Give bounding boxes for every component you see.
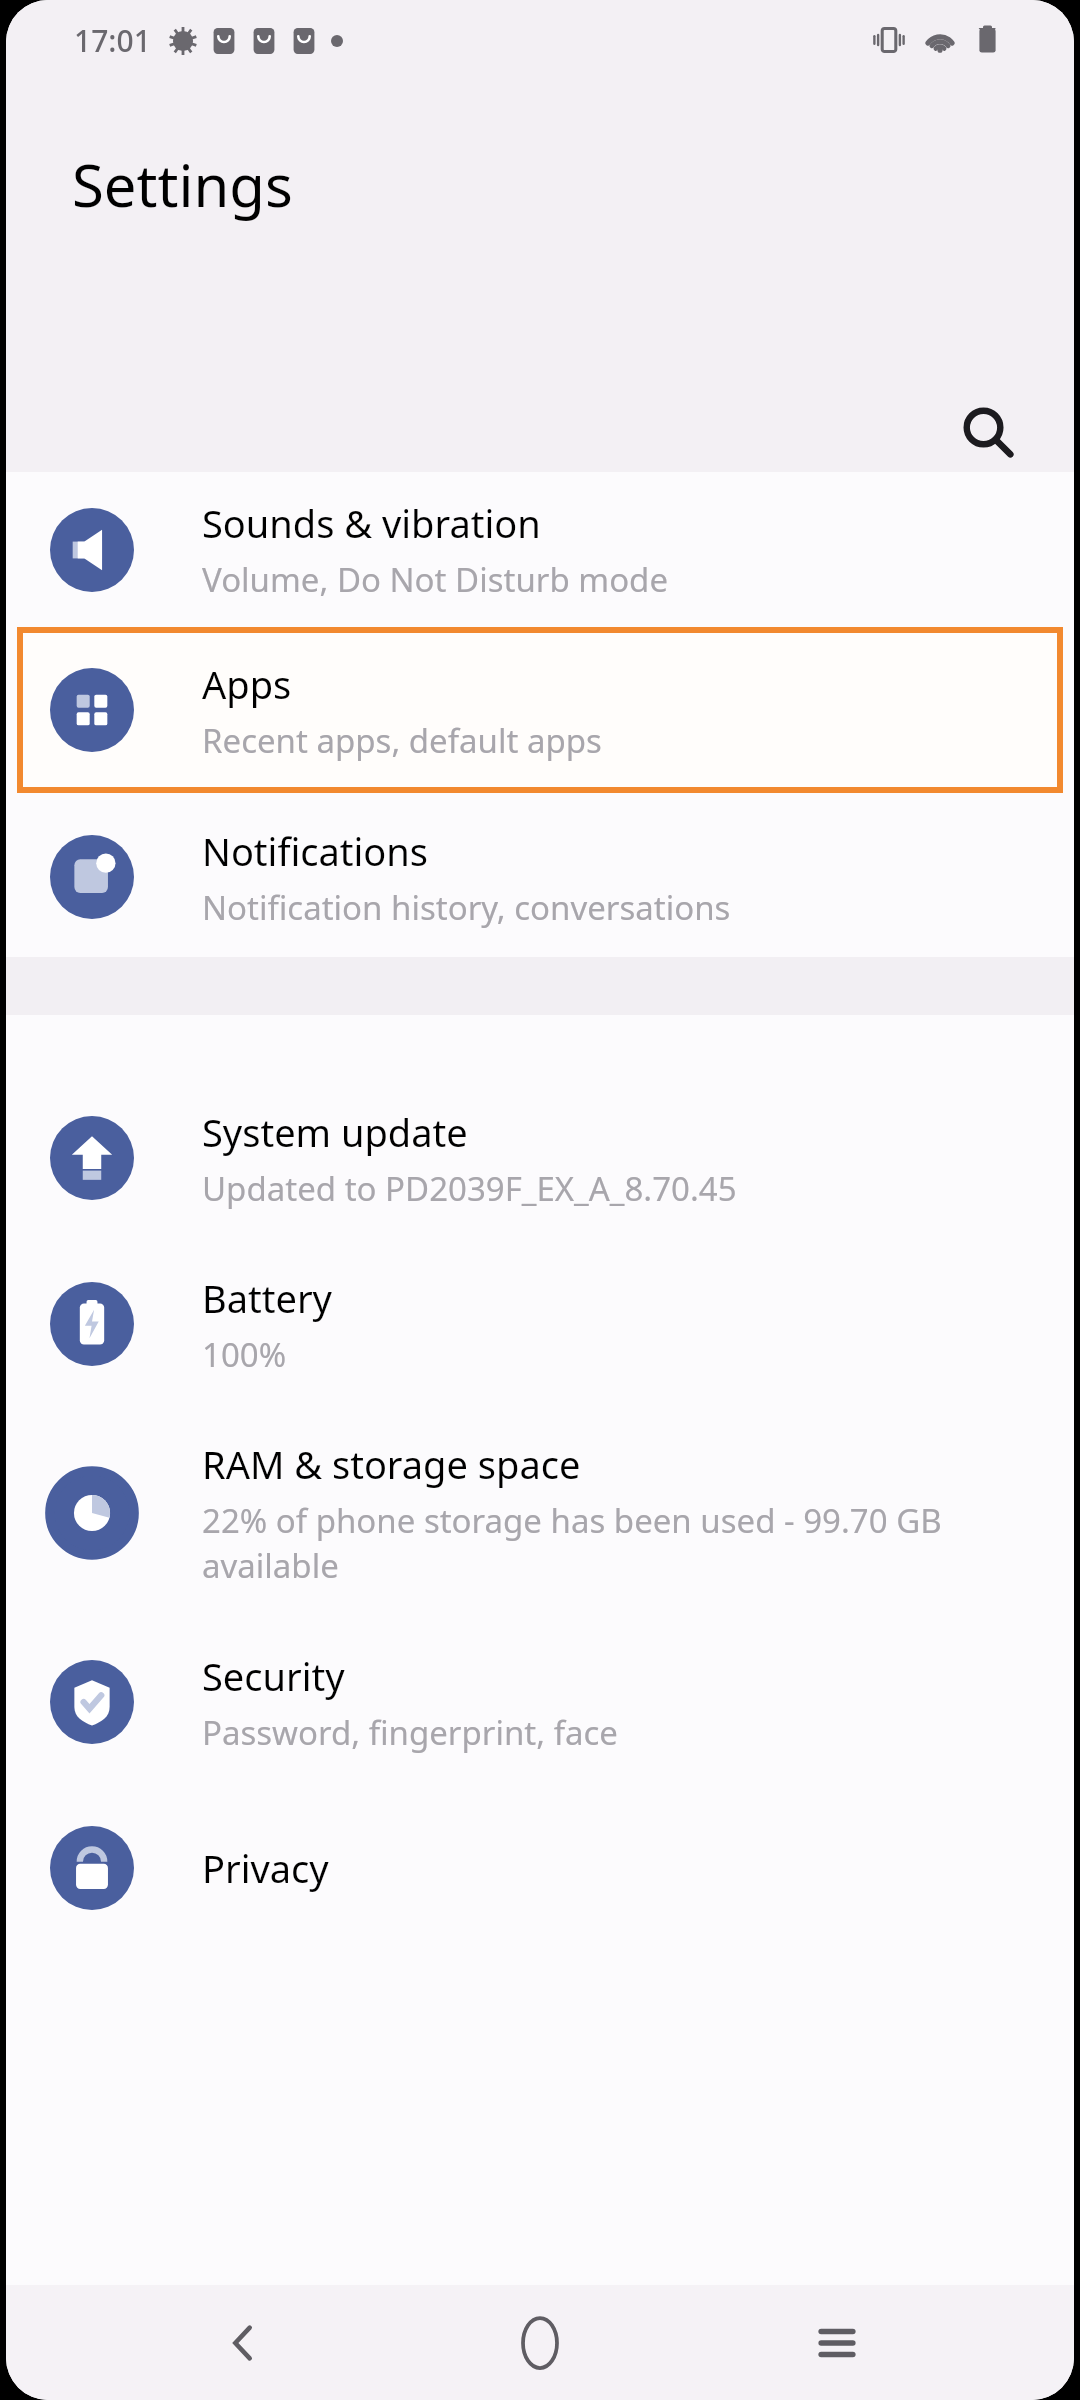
- button[interactable]: System update: [6, 1015, 1074, 1241]
- button[interactable]: Battery: [6, 1241, 1074, 1407]
- staticText: Privacy: [202, 1842, 329, 1894]
- staticText: Volume, Do Not Disturb mode: [202, 557, 669, 602]
- staticText: 100%: [202, 1332, 287, 1377]
- staticText: Sounds & vibration: [202, 497, 541, 549]
- button[interactable]: Home: [480, 2285, 600, 2400]
- staticText: Settings: [72, 145, 293, 224]
- button[interactable]: Notifications: [6, 797, 1074, 957]
- staticText: Security: [202, 1650, 345, 1702]
- button[interactable]: Sounds & vibration: [6, 472, 1074, 627]
- button[interactable]: Search: [936, 380, 1040, 484]
- staticText: Password, fingerprint, face: [202, 1710, 618, 1755]
- button[interactable]: RAM & storage space: [6, 1407, 1074, 1619]
- staticText: Apps: [202, 658, 292, 710]
- button[interactable]: Recent apps: [777, 2285, 897, 2400]
- staticText: Notifications: [202, 825, 429, 877]
- button[interactable]: Security: [6, 1619, 1074, 1785]
- staticText: 17:01: [74, 20, 151, 61]
- staticText: Recent apps, default apps: [202, 718, 602, 763]
- staticText: 22% of phone storage has been used - 99.…: [202, 1498, 1034, 1588]
- button[interactable]: Privacy: [6, 1785, 1074, 1951]
- staticText: System update: [202, 1106, 468, 1158]
- button[interactable]: Back: [183, 2285, 303, 2400]
- staticText: RAM & storage space: [202, 1438, 581, 1490]
- staticText: Updated to PD2039F_EX_A_8.70.45: [202, 1166, 737, 1211]
- button[interactable]: Apps: [17, 627, 1063, 793]
- staticText: Notification history, conversations: [202, 885, 731, 930]
- staticText: Battery: [202, 1272, 332, 1324]
